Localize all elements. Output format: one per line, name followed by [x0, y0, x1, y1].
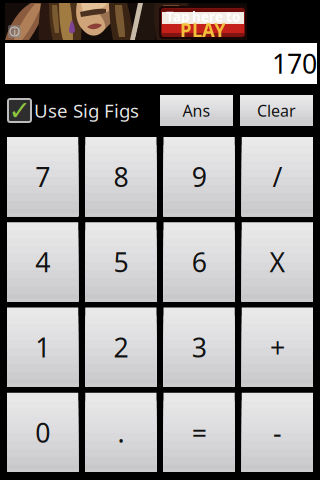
- staticText: 7: [35, 159, 50, 194]
- staticText: 3: [192, 329, 207, 365]
- button[interactable]: 7: [7, 137, 78, 216]
- button[interactable]: .: [85, 393, 156, 472]
- staticText: -: [273, 415, 282, 450]
- button[interactable]: Advertisement — tap here to play: [5, 3, 247, 40]
- button[interactable]: 9: [163, 137, 235, 216]
- button[interactable]: 3: [163, 307, 235, 387]
- staticText: 9: [192, 159, 207, 194]
- staticText: 0: [35, 415, 50, 450]
- staticText: X: [269, 244, 285, 280]
- staticText: 5: [113, 244, 128, 280]
- staticText: 6: [192, 244, 207, 280]
- staticText: 2: [113, 329, 128, 365]
- staticText: 4: [35, 244, 50, 280]
- button[interactable]: X: [242, 222, 313, 301]
- staticText: Clear: [257, 100, 296, 121]
- button[interactable]: 1: [7, 307, 78, 387]
- staticText: i: [13, 25, 15, 38]
- staticText: ✓: [8, 95, 30, 126]
- button[interactable]: /: [242, 137, 313, 216]
- button[interactable]: +: [242, 307, 313, 387]
- staticText: =: [192, 415, 207, 450]
- staticText: 8: [113, 159, 128, 194]
- staticText: PLAY: [180, 18, 226, 42]
- button[interactable]: 6: [163, 222, 235, 301]
- button[interactable]: =: [163, 393, 235, 472]
- button[interactable]: Ans: [160, 95, 233, 126]
- button[interactable]: 0: [7, 393, 78, 472]
- button[interactable]: 4: [7, 222, 78, 301]
- staticText: Use Sig Figs: [34, 98, 139, 123]
- button[interactable]: 5: [85, 222, 156, 301]
- button[interactable]: 2: [85, 307, 156, 387]
- button[interactable]: ✓: [8, 98, 139, 123]
- staticText: 170: [272, 46, 317, 81]
- staticText: 1: [35, 329, 50, 365]
- staticText: Tap here to: [166, 8, 240, 25]
- button[interactable]: 8: [85, 137, 156, 216]
- staticText: .: [117, 415, 124, 450]
- staticText: Ans: [182, 100, 210, 121]
- button[interactable]: -: [242, 393, 313, 472]
- button[interactable]: Clear: [240, 95, 313, 126]
- staticText: /: [272, 159, 282, 194]
- staticText: +: [270, 329, 285, 365]
